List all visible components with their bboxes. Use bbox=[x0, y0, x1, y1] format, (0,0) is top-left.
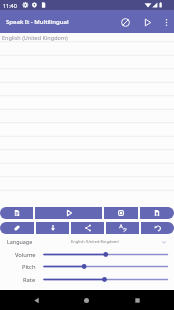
button[interactable]: Save bbox=[140, 207, 174, 219]
staticText: English (United Kingdom) bbox=[2, 34, 68, 41]
staticText: 11:40 bbox=[3, 2, 17, 9]
staticText: Rate bbox=[23, 276, 36, 284]
button[interactable]: Erase bbox=[0, 222, 34, 234]
button[interactable]: Volume bbox=[44, 249, 174, 260]
staticText: Pitch bbox=[22, 263, 36, 271]
staticText: Volume bbox=[15, 251, 36, 259]
button[interactable]: Share bbox=[71, 222, 104, 234]
button[interactable]: Rate bbox=[44, 274, 174, 285]
button[interactable]: Pitch bbox=[44, 261, 174, 272]
button[interactable]: Stop bbox=[104, 207, 138, 219]
button[interactable]: Play bbox=[136, 11, 158, 33]
button[interactable]: Language bbox=[0, 236, 174, 247]
button[interactable]: Speak bbox=[35, 207, 102, 219]
button[interactable]: Home bbox=[74, 290, 98, 310]
button[interactable]: Translate bbox=[106, 222, 139, 234]
button[interactable]: More options bbox=[158, 14, 174, 30]
button[interactable]: Back bbox=[24, 290, 48, 310]
button[interactable]: New note bbox=[0, 207, 33, 219]
staticText: Language bbox=[7, 238, 33, 245]
button[interactable]: Recent apps bbox=[125, 290, 149, 310]
button[interactable]: Download bbox=[36, 222, 69, 234]
button[interactable]: Stop speaking bbox=[114, 11, 136, 33]
button[interactable]: Undo bbox=[141, 222, 174, 234]
staticText: English (United Kingdom) bbox=[71, 239, 119, 244]
staticText: Speak It - Multilingual bbox=[6, 18, 69, 26]
